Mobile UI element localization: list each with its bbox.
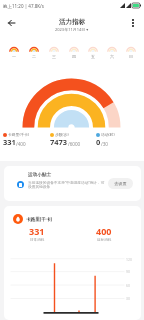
staticText: 活动(时) (101, 132, 115, 137)
button[interactable]: 活动(时) (96, 132, 142, 147)
staticText: 当前连接的设备不支持“中高强度活动”统计，可设置其他设备 (28, 180, 107, 190)
button[interactable]: 二 (24, 43, 44, 65)
staticText: 日常消耗 (30, 238, 45, 243)
staticText: 331 (29, 225, 45, 237)
staticText: 三 (52, 54, 56, 59)
button[interactable]: 更多选项 (123, 13, 142, 32)
staticText: 二 (32, 54, 36, 59)
button[interactable]: 返回 (2, 13, 21, 32)
staticText: 2023年11月14日 ▾ (55, 27, 89, 32)
button[interactable]: 四 (64, 43, 83, 65)
staticText: 四 (72, 54, 76, 59)
button[interactable]: 去设置 (108, 178, 133, 189)
staticText: /6000 (68, 141, 81, 147)
button[interactable]: 日 (121, 43, 140, 65)
staticText: 晚上11:20 | 47.8K/s (3, 3, 44, 9)
staticText: 400 (96, 225, 112, 237)
button[interactable]: 六 (102, 43, 121, 65)
staticText: 日 (129, 54, 133, 59)
button[interactable]: 三 (44, 43, 64, 65)
staticText: 六 (110, 54, 114, 59)
staticText: 卡路里(千卡) (26, 216, 53, 222)
button[interactable]: 一 (4, 43, 24, 65)
staticText: 活力指标 (59, 18, 85, 26)
staticText: 一 (12, 54, 16, 59)
staticText: 120 (126, 257, 138, 262)
staticText: /30 (101, 141, 108, 147)
staticText: 7473 (50, 137, 68, 147)
staticText: 卡路里(千卡) (8, 132, 30, 137)
button[interactable]: 五 (83, 43, 102, 65)
button[interactable]: 卡路里(千卡) (3, 132, 50, 147)
staticText: 90 (126, 269, 138, 274)
button[interactable]: 卡路里(千卡) (13, 214, 53, 224)
button[interactable]: 步数(步) (50, 132, 96, 147)
staticText: 30 (126, 296, 138, 301)
staticText: 去设置 (114, 181, 127, 186)
staticText: 目标消耗 (97, 238, 112, 243)
staticText: 运动小贴士 (28, 172, 51, 178)
staticText: /400 (16, 141, 26, 147)
staticText: 五 (91, 54, 95, 59)
button[interactable]: 运动小贴士 (4, 166, 141, 201)
staticText: 步数(步) (55, 132, 69, 137)
staticText: 0 (96, 137, 101, 147)
staticText: 60 (126, 283, 138, 288)
staticText: 331 (3, 137, 16, 147)
